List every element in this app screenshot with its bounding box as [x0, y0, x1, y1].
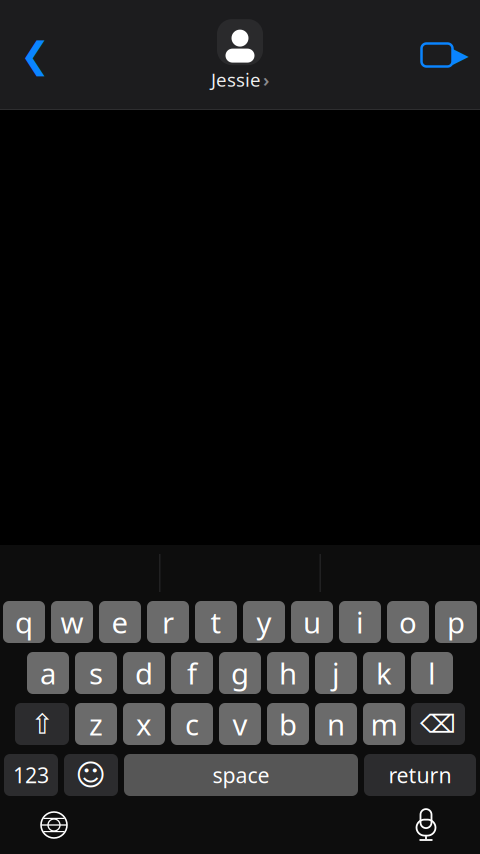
button[interactable]: g: [219, 652, 261, 694]
button[interactable]: Shift: [15, 703, 69, 745]
button[interactable]: z: [75, 703, 117, 745]
button[interactable]: m: [363, 703, 405, 745]
button[interactable]: a: [27, 652, 69, 694]
button[interactable]: e: [99, 601, 141, 643]
staticText: space: [212, 761, 269, 789]
button[interactable]: x: [123, 703, 165, 745]
staticText: i: [356, 602, 364, 641]
staticText: g: [231, 653, 249, 692]
staticText: p: [447, 602, 465, 641]
staticText: e: [111, 602, 128, 641]
staticText: l: [428, 653, 436, 692]
staticText: Jessie: [211, 67, 261, 92]
button[interactable]: i: [339, 601, 381, 643]
staticText: o: [399, 602, 417, 641]
button[interactable]: r: [147, 601, 189, 643]
staticText: u: [303, 602, 321, 641]
staticText: y: [256, 602, 271, 641]
button[interactable]: y: [243, 601, 285, 643]
button[interactable]: w: [51, 601, 93, 643]
button[interactable]: Numbers: [4, 754, 58, 796]
staticText: m: [370, 704, 397, 743]
staticText: c: [185, 704, 199, 743]
staticText: ⇧: [30, 708, 53, 740]
button[interactable]: k: [363, 652, 405, 694]
staticText: ❮: [20, 35, 50, 75]
button[interactable]: Next keyboard: [30, 801, 78, 849]
staticText: 123: [13, 761, 49, 789]
staticText: s: [89, 653, 103, 692]
button[interactable]: u: [291, 601, 333, 643]
button[interactable]: c: [171, 703, 213, 745]
button[interactable]: FaceTime video call: [415, 25, 475, 85]
staticText: d: [135, 653, 153, 692]
button[interactable]: t: [195, 601, 237, 643]
staticText: return: [388, 761, 451, 789]
staticText: ▶: [452, 43, 468, 67]
staticText: j: [332, 653, 340, 692]
staticText: ›: [263, 67, 269, 92]
button[interactable]: l: [411, 652, 453, 694]
staticText: w: [60, 602, 83, 641]
button[interactable]: o: [387, 601, 429, 643]
button[interactable]: p: [435, 601, 477, 643]
button[interactable]: Emoji: [64, 754, 118, 796]
staticText: k: [376, 653, 392, 692]
button[interactable]: Jessie: [211, 18, 269, 92]
staticText: a: [40, 653, 56, 692]
button[interactable]: Return: [364, 754, 476, 796]
button[interactable]: v: [219, 703, 261, 745]
button[interactable]: h: [267, 652, 309, 694]
staticText: x: [136, 704, 152, 743]
staticText: z: [89, 704, 103, 743]
button[interactable]: n: [315, 703, 357, 745]
button[interactable]: q: [3, 601, 45, 643]
button[interactable]: d: [123, 652, 165, 694]
staticText: ⌫: [420, 710, 456, 738]
button[interactable]: Back: [5, 25, 65, 85]
staticText: h: [279, 653, 297, 692]
button[interactable]: Delete: [411, 703, 465, 745]
button[interactable]: j: [315, 652, 357, 694]
staticText: q: [15, 602, 33, 641]
button[interactable]: b: [267, 703, 309, 745]
staticText: f: [187, 653, 197, 692]
staticText: t: [210, 602, 221, 641]
button[interactable]: Dictate: [402, 801, 450, 849]
staticText: ☺: [75, 758, 106, 792]
staticText: v: [232, 704, 247, 743]
staticText: r: [162, 602, 174, 641]
button[interactable]: s: [75, 652, 117, 694]
staticText: n: [327, 704, 345, 743]
button[interactable]: f: [171, 652, 213, 694]
button[interactable]: Space: [124, 754, 358, 796]
staticText: b: [279, 704, 297, 743]
